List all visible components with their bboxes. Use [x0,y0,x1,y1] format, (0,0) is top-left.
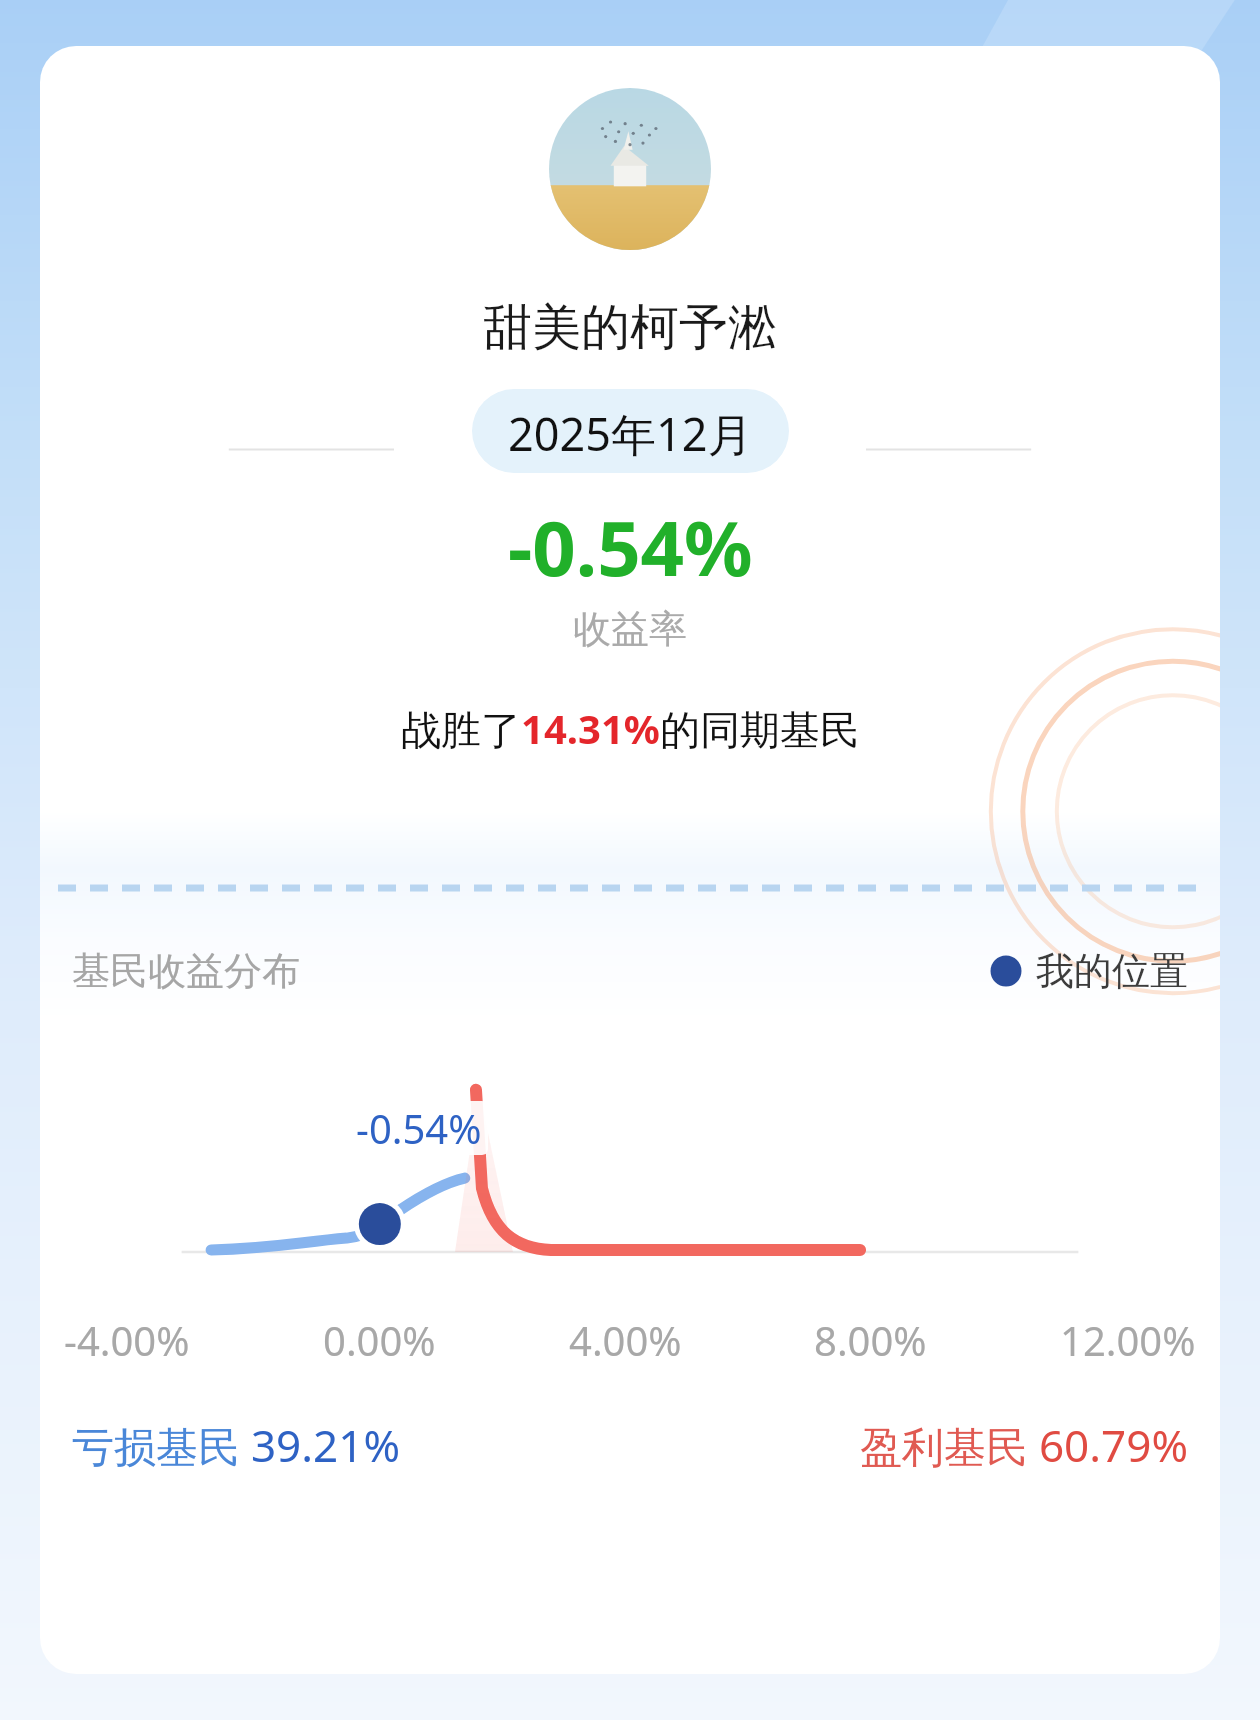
button[interactable]: 我的位置 [988,947,1188,995]
staticText: 战胜了14.31%的同期基民 [401,701,860,756]
staticText: 2025年12月 [508,403,753,459]
staticText: -4.00% [64,1313,190,1367]
button[interactable]: 2025年12月 [472,389,789,473]
staticText: 甜美的柯予淞 [483,297,777,359]
staticText: -0.54% [508,495,753,599]
staticText: 4.00% [569,1313,682,1367]
staticText: 基民收益分布 [72,947,300,995]
staticText: -0.54% [356,1101,482,1155]
staticText: 盈利基民 60.79% [860,1415,1188,1475]
staticText: 收益率 [573,605,687,653]
staticText: 12.00% [1060,1313,1196,1367]
staticText: 我的位置 [1036,947,1188,995]
staticText: 亏损基民 39.21% [72,1415,400,1475]
staticText: 8.00% [814,1313,927,1367]
staticText: 0.00% [323,1313,436,1367]
